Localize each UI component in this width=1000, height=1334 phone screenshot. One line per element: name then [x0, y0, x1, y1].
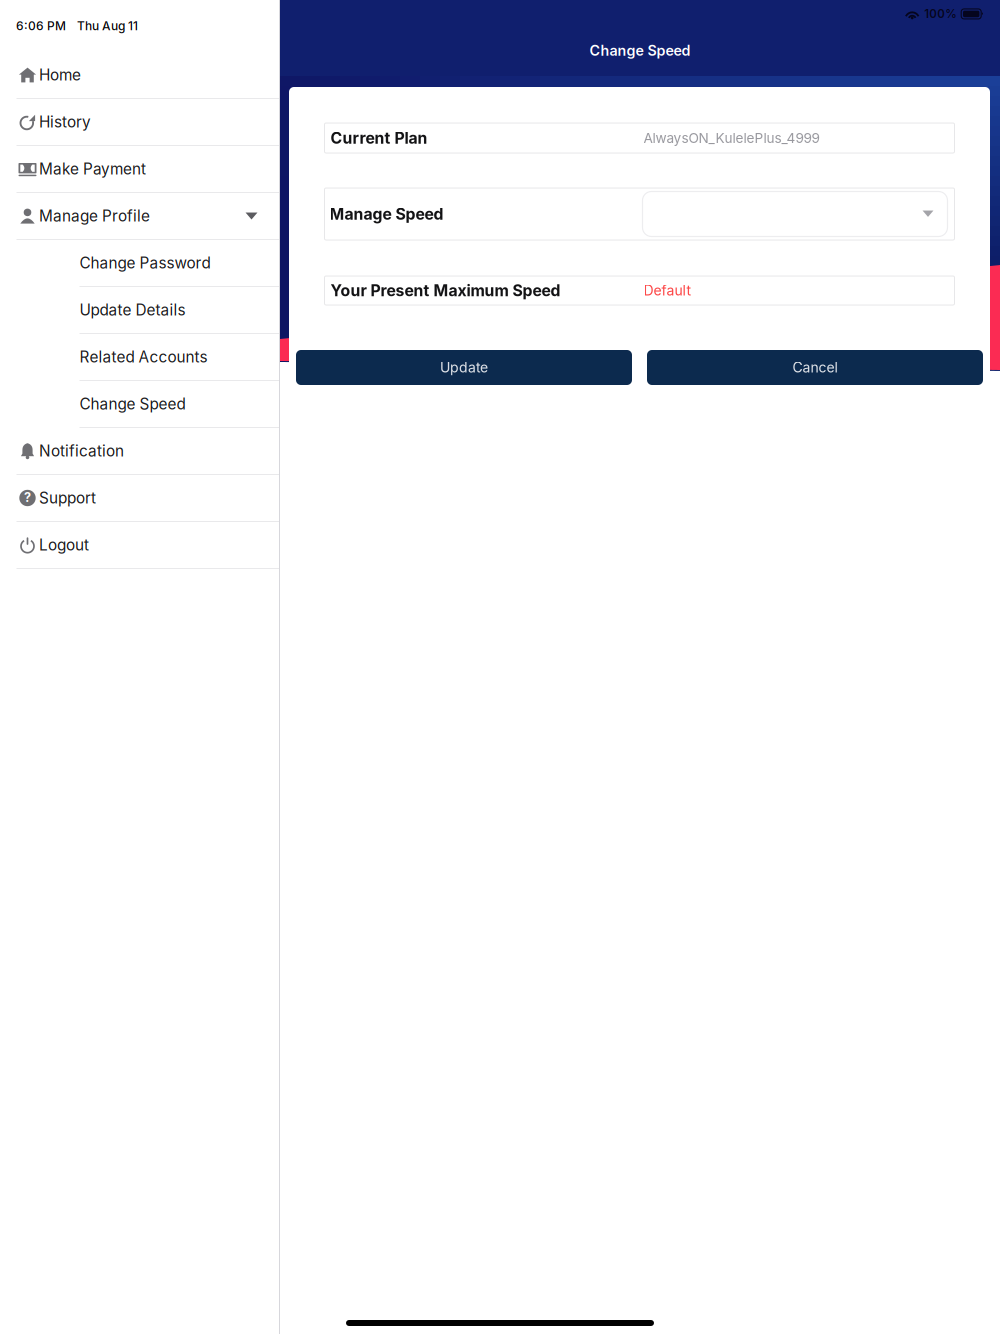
staticText: 6:06 PM	[16, 19, 66, 33]
staticText: Current Plan	[330, 128, 427, 147]
button[interactable]: Select speed	[642, 191, 947, 236]
staticText: Change Password	[79, 254, 210, 272]
staticText: Thu Aug 11	[77, 19, 138, 33]
staticText: 100%	[924, 7, 957, 21]
staticText: Cancel	[792, 359, 837, 376]
button[interactable]: ?	[0, 475, 279, 522]
staticText: Default	[643, 282, 691, 299]
staticText: Manage Profile	[39, 207, 150, 225]
staticText: Update Details	[79, 301, 185, 319]
staticText: History	[39, 113, 91, 131]
staticText: Change Speed	[79, 395, 185, 413]
button[interactable]: Change Password	[0, 240, 279, 287]
staticText: Notification	[39, 442, 124, 460]
staticText: ?	[24, 490, 31, 505]
staticText: Related Accounts	[79, 348, 207, 366]
staticText: Manage Speed	[329, 204, 443, 223]
staticText: Home	[39, 66, 81, 84]
staticText: Support	[39, 489, 96, 507]
button[interactable]: Manage Profile	[0, 193, 279, 240]
button[interactable]: Notification	[0, 428, 279, 475]
staticText: AlwaysON_KulelePlus_4999	[643, 130, 819, 146]
button[interactable]: Make Payment	[0, 146, 279, 193]
staticText: Logout	[39, 536, 89, 554]
button[interactable]: Update	[296, 350, 632, 385]
button[interactable]: History	[0, 99, 279, 146]
staticText: Update	[440, 359, 488, 376]
button[interactable]: Cancel	[647, 350, 983, 385]
button[interactable]: Home	[0, 52, 279, 99]
staticText: Your Present Maximum Speed	[330, 281, 560, 300]
button[interactable]: Update Details	[0, 287, 279, 334]
staticText: Make Payment	[39, 160, 146, 178]
button[interactable]: Change Speed	[0, 381, 279, 428]
staticText: Change Speed	[589, 42, 690, 59]
button[interactable]: Logout	[0, 522, 279, 569]
button[interactable]: Related Accounts	[0, 334, 279, 381]
